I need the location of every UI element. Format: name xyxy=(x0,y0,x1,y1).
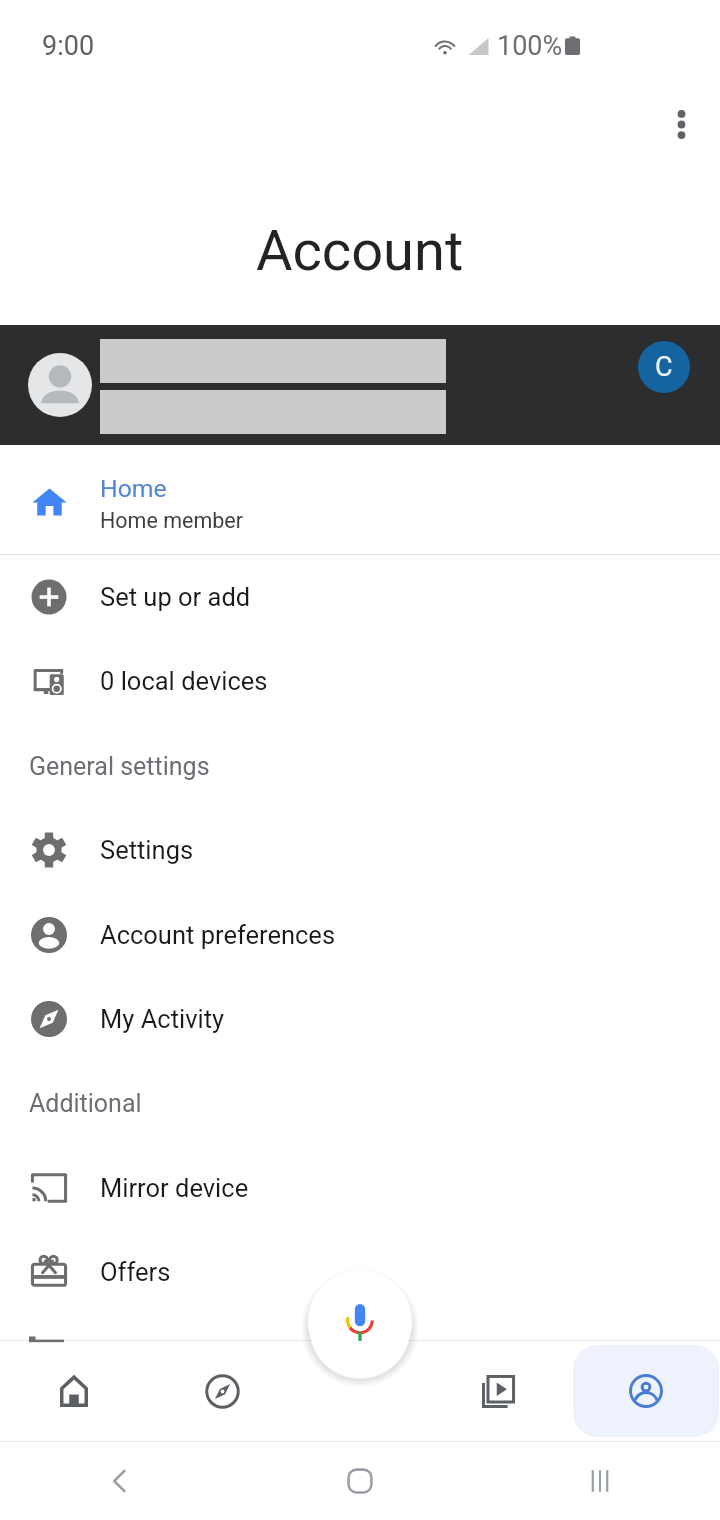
staticText: Settings xyxy=(100,835,194,865)
button[interactable]: Google Assistant xyxy=(308,1270,412,1374)
staticText: Account xyxy=(256,218,464,284)
staticText: Offers xyxy=(100,1257,171,1287)
button[interactable]: Home xyxy=(0,445,720,554)
button[interactable]: Home xyxy=(1,1345,147,1437)
button[interactable]: 0 local devices xyxy=(0,639,720,723)
button[interactable]: Profile C xyxy=(638,341,690,393)
staticText: Home member xyxy=(100,508,244,533)
staticText: Account preferences xyxy=(100,920,336,950)
button[interactable]: Profile C xyxy=(0,325,720,445)
staticText: Mirror device xyxy=(100,1173,249,1203)
staticText: General settings xyxy=(29,752,210,781)
button[interactable]: Settings xyxy=(0,808,720,892)
button[interactable]: Explore xyxy=(149,1345,295,1437)
button[interactable]: Recents xyxy=(585,1466,615,1496)
staticText: Set up or add xyxy=(100,582,251,612)
staticText: Home xyxy=(100,474,167,503)
staticText: 0 local devices xyxy=(100,666,268,696)
button[interactable]: Home xyxy=(345,1466,375,1496)
button[interactable]: Mirror device xyxy=(0,1146,720,1230)
button[interactable]: Media xyxy=(425,1345,571,1437)
button[interactable]: Account xyxy=(573,1345,719,1437)
button[interactable]: My Activity xyxy=(0,977,720,1061)
button[interactable]: Account preferences xyxy=(0,893,720,977)
button[interactable]: Offers xyxy=(0,1230,720,1314)
staticText: My Activity xyxy=(100,1004,225,1034)
button[interactable]: Back xyxy=(103,1464,137,1498)
staticText: 9:00 xyxy=(42,30,95,62)
staticText: 100% xyxy=(497,30,563,62)
button[interactable]: More options xyxy=(643,86,719,162)
staticText: Additional xyxy=(29,1089,142,1118)
staticText: C xyxy=(655,351,673,383)
button[interactable]: Set up or add xyxy=(0,555,720,639)
